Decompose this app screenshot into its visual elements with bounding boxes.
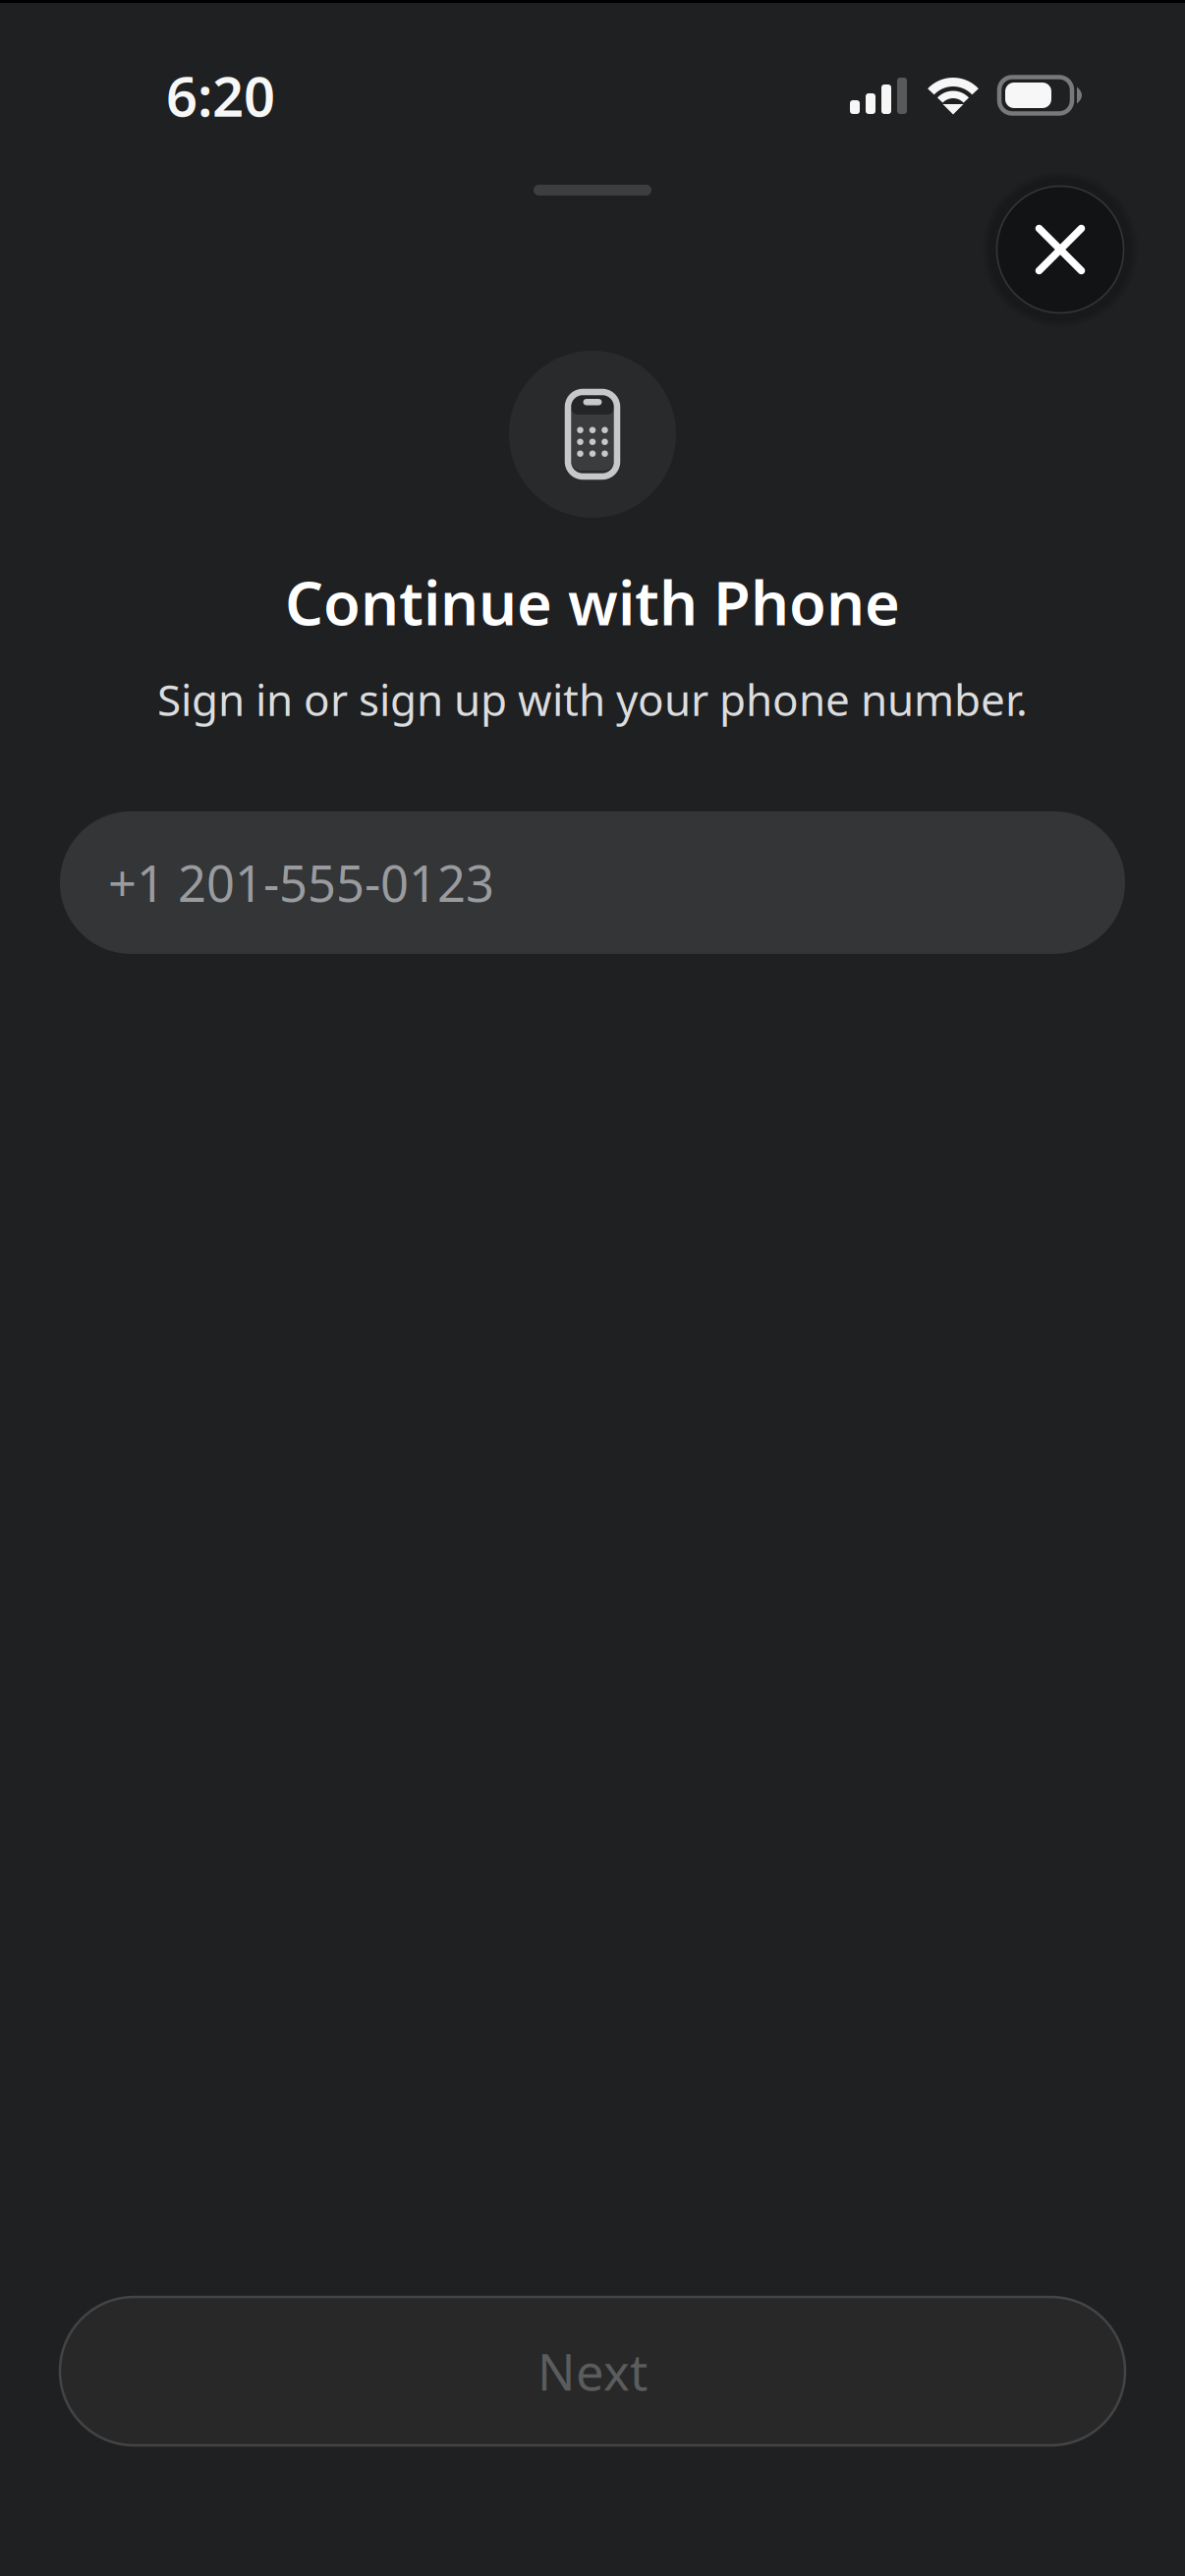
staticText: Next xyxy=(537,2338,648,2404)
button[interactable]: Close xyxy=(982,171,1139,328)
staticText: Continue with Phone xyxy=(285,562,900,642)
staticText: Sign in or sign up with your phone numbe… xyxy=(157,670,1028,728)
staticText: 6:20 xyxy=(166,59,275,132)
button[interactable]: Next xyxy=(60,2297,1125,2445)
staticText: +1 201-555-0123 xyxy=(108,850,494,916)
button[interactable]: +1 201-555-0123 xyxy=(60,811,1125,954)
